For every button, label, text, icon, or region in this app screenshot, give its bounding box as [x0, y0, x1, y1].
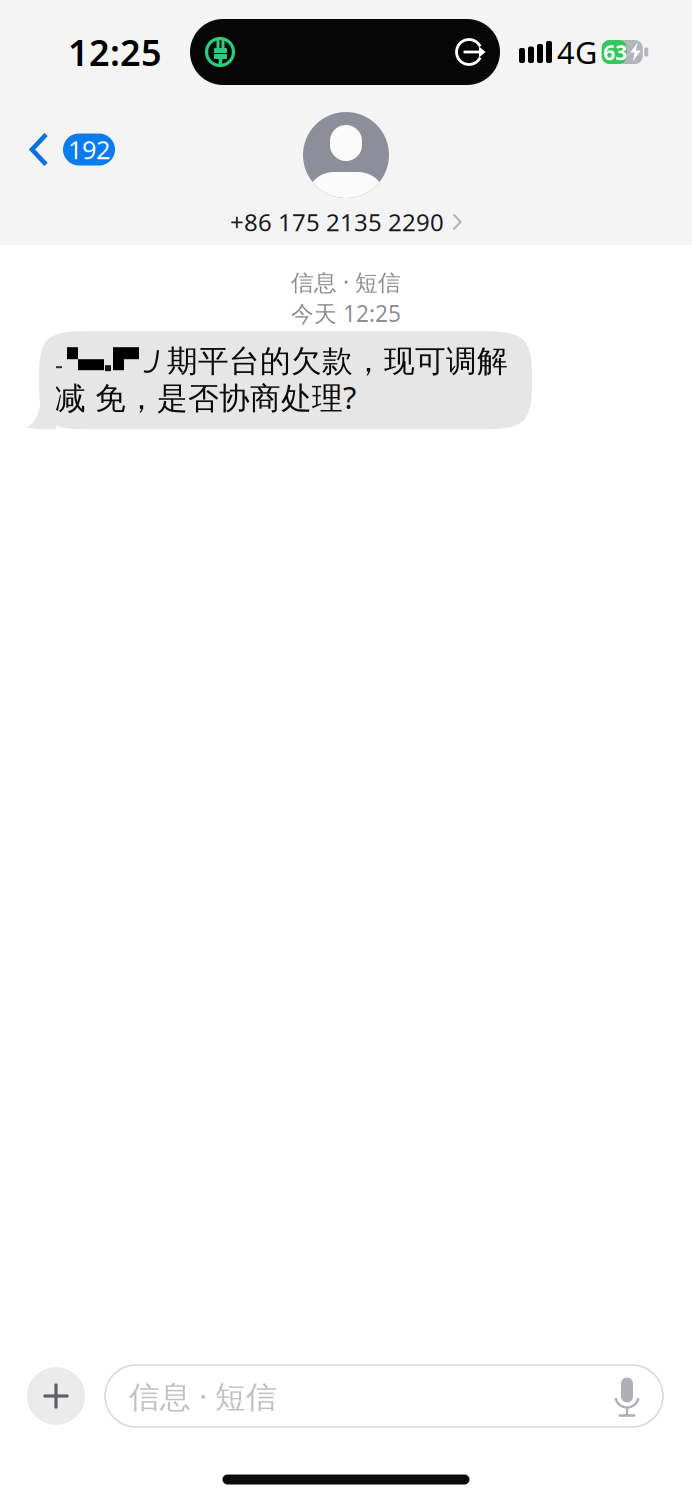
button[interactable]: 信息 · 短信: [105, 1365, 663, 1427]
staticText: 减 免，是否协商处理?: [55, 377, 356, 417]
button[interactable]: Add attachment: [27, 1367, 85, 1425]
staticText: 192: [68, 133, 110, 166]
staticText: 信息 · 短信: [291, 267, 401, 297]
staticText: 期平台的欠款，现可调解: [167, 342, 508, 380]
staticText: 信息 · 短信: [129, 1376, 277, 1416]
staticText: 12:25: [68, 28, 162, 76]
button[interactable]: +86 175 2135 2290: [230, 104, 462, 238]
staticText: +86 175 2135 2290: [230, 206, 444, 238]
staticText: 4G: [557, 32, 597, 72]
staticText: 今天 12:25: [291, 298, 401, 328]
button[interactable]: 192: [0, 104, 115, 167]
staticText: 63: [603, 38, 627, 66]
